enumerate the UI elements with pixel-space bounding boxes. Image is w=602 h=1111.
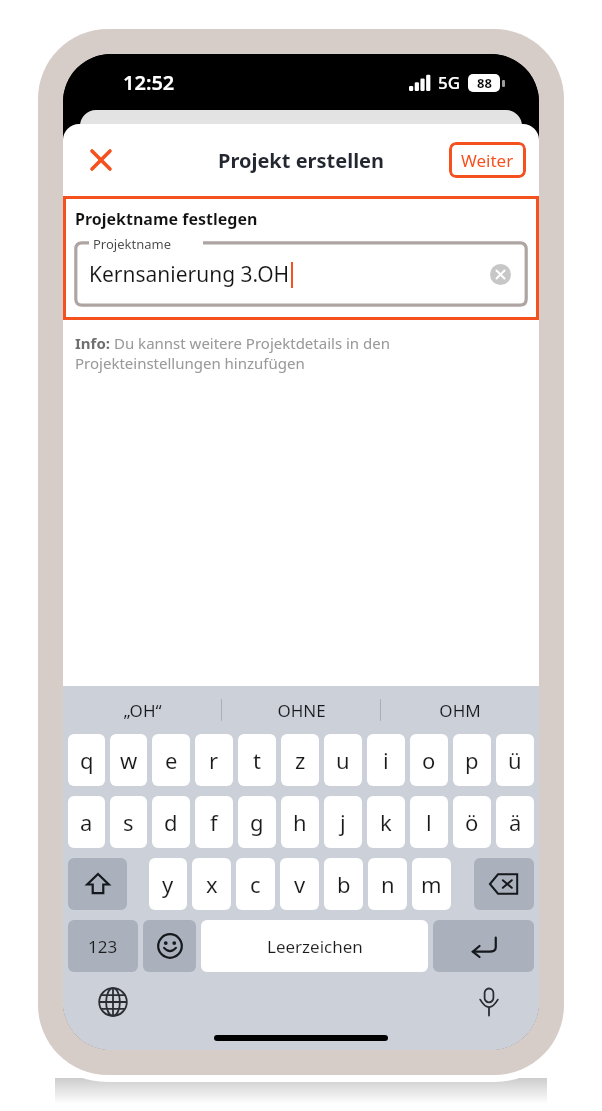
staticText: f [210,807,218,837]
button[interactable]: w [110,734,147,786]
button[interactable]: r [195,734,233,786]
button[interactable]: s [110,796,147,848]
button[interactable]: d [152,796,190,848]
staticText: q [80,745,94,775]
staticText: OHNE [277,699,326,722]
button[interactable]: m [412,858,451,910]
staticText: o [422,745,436,775]
staticText: k [380,807,392,837]
staticText: w [120,745,138,775]
staticText: c [250,869,261,899]
button[interactable]: b [324,858,363,910]
staticText: m [421,869,442,899]
button[interactable]: ä [496,796,534,848]
button[interactable]: q [68,734,105,786]
button[interactable]: h [281,796,319,848]
button[interactable]: f [195,796,233,848]
button[interactable]: OHNE [222,686,380,734]
staticText: j [340,807,346,837]
staticText: v [294,869,306,899]
staticText: i [383,745,389,775]
button[interactable]: Leerzeichen [201,920,428,972]
staticText: 5G [438,71,461,94]
button[interactable]: l [410,796,448,848]
button[interactable]: z [281,734,319,786]
staticText: p [465,745,479,775]
staticText: Projekt erstellen [218,147,385,174]
button[interactable]: c [236,858,275,910]
staticText: Du kannst weitere Projektdetails in den [114,333,390,353]
staticText: Weiter [461,149,514,172]
button[interactable]: ö [453,796,491,848]
staticText: ö [465,807,479,837]
staticText: b [337,869,351,899]
button[interactable]: Löschen [474,858,534,910]
staticText: r [209,745,219,775]
button[interactable]: x [192,858,231,910]
button[interactable]: u [324,734,362,786]
staticText: u [336,745,350,775]
button[interactable]: Weiter [449,142,526,178]
staticText: l [426,807,432,837]
staticText: h [293,807,307,837]
staticText: 123 [88,935,118,958]
button[interactable]: ü [496,734,534,786]
staticText: s [123,807,134,837]
staticText: Kernsanierung 3.OH [89,260,290,289]
staticText: n [381,869,395,899]
button[interactable]: Emoji [143,920,196,972]
staticText: y [162,869,174,899]
staticText: „OH“ [123,699,162,722]
staticText: Projektname festlegen [75,208,258,230]
button[interactable]: t [238,734,276,786]
button[interactable]: OHM [381,686,539,734]
staticText: e [165,745,178,775]
staticText: a [80,807,93,837]
button[interactable]: Umschalt [68,858,127,910]
staticText: g [250,807,264,837]
button[interactable]: y [149,858,187,910]
staticText: 12:52 [123,69,175,96]
button[interactable]: k [367,796,405,848]
button[interactable]: Projektname [75,242,527,306]
staticText: Info: [75,333,114,353]
button[interactable]: g [238,796,276,848]
staticText: x [206,869,218,899]
button[interactable]: a [68,796,105,848]
button[interactable]: Schließen [77,136,125,184]
button[interactable]: Löschen [485,259,515,289]
staticText: 88 [477,74,492,92]
button[interactable]: j [324,796,362,848]
button[interactable]: e [152,734,190,786]
button[interactable]: Eingabe [433,920,534,972]
staticText: Projekteinstellungen hinzufügen [75,353,305,373]
button[interactable]: v [280,858,319,910]
button[interactable]: „OH“ [63,686,221,734]
button[interactable]: Diktieren [467,980,511,1024]
staticText: ü [508,745,522,775]
button[interactable]: i [367,734,405,786]
button[interactable]: n [368,858,407,910]
staticText: Projektname [93,235,171,253]
staticText: Leerzeichen [267,935,363,958]
button[interactable]: Sprache wechseln [91,980,135,1024]
staticText: OHM [439,699,481,722]
staticText: d [164,807,178,837]
staticText: z [295,745,306,775]
staticText: t [253,745,261,775]
staticText: ä [509,807,522,837]
button[interactable]: 123 [68,920,138,972]
button[interactable]: p [453,734,491,786]
button[interactable]: o [410,734,448,786]
